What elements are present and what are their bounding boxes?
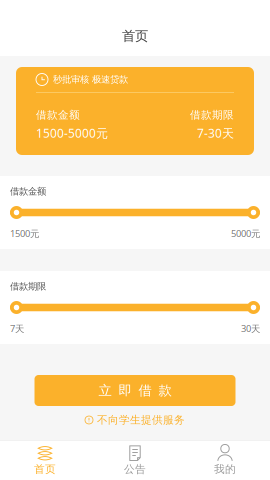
button[interactable]: 立即借款 — [34, 375, 235, 406]
staticText: 1500元 — [10, 227, 39, 240]
button[interactable]: 公告 — [90, 440, 180, 480]
staticText: 借款金额 — [10, 186, 46, 197]
staticText: 借款期限 — [190, 108, 234, 121]
staticText: 立即借款 — [98, 382, 171, 399]
staticText: 借款金额 — [36, 108, 80, 121]
button[interactable]: 首页 — [0, 440, 90, 480]
staticText: 秒批审核 极速贷款 — [53, 74, 128, 85]
staticText: 1500-5000元 — [36, 125, 108, 141]
staticText: 5000元 — [231, 227, 260, 240]
staticText: 首页 — [122, 28, 148, 44]
staticText: 公告 — [124, 463, 146, 476]
staticText: 7天 — [10, 322, 24, 335]
staticText: 不向学生提供服务 — [97, 413, 185, 426]
staticText: 借款期限 — [10, 281, 46, 292]
button[interactable]: 我的 — [180, 440, 270, 480]
staticText: 30天 — [241, 322, 260, 335]
staticText: 首页 — [34, 463, 56, 476]
staticText: 7-30天 — [197, 125, 234, 141]
staticText: 我的 — [214, 463, 236, 476]
